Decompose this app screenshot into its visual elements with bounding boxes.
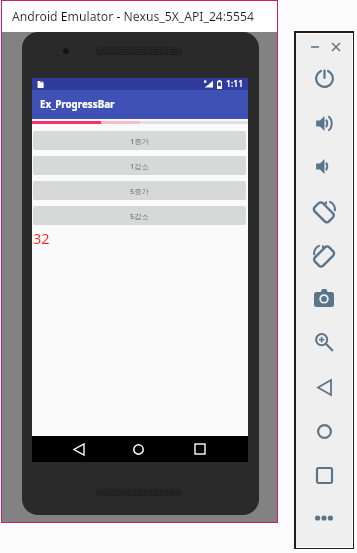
button[interactable]: Close [328, 39, 343, 54]
button[interactable]: Volume up [311, 110, 337, 136]
staticText: 32 [33, 228, 50, 248]
button[interactable]: Volume down [311, 153, 337, 179]
staticText: 1감소 [130, 161, 149, 171]
button[interactable]: Rotate left [311, 198, 337, 224]
button[interactable]: Minimize [307, 39, 322, 54]
button[interactable]: Rotate right [311, 242, 337, 268]
button[interactable]: Overview [311, 462, 337, 488]
staticText: 5증가 [130, 186, 149, 196]
button[interactable]: 5감소 [33, 206, 246, 225]
staticText: Ex_ProgressBar [40, 98, 115, 111]
staticText: Android Emulator - Nexus_5X_API_24:5554 [12, 8, 254, 25]
staticText: 1증가 [130, 136, 149, 146]
button[interactable]: 1감소 [33, 156, 246, 175]
button[interactable]: Power [311, 65, 337, 91]
button[interactable]: Back [311, 374, 337, 400]
button[interactable]: Zoom in [311, 329, 337, 355]
staticText: 5감소 [130, 211, 149, 221]
button[interactable]: More [311, 505, 337, 531]
button[interactable]: Home [311, 418, 337, 444]
button[interactable]: Home [124, 439, 152, 459]
button[interactable]: Recent apps [186, 439, 214, 459]
button[interactable]: Back [65, 439, 93, 459]
staticText: 1:11 [226, 78, 244, 90]
button[interactable]: 1증가 [33, 131, 246, 150]
button[interactable]: Take screenshot [311, 285, 337, 311]
button[interactable]: 5증가 [33, 181, 246, 200]
